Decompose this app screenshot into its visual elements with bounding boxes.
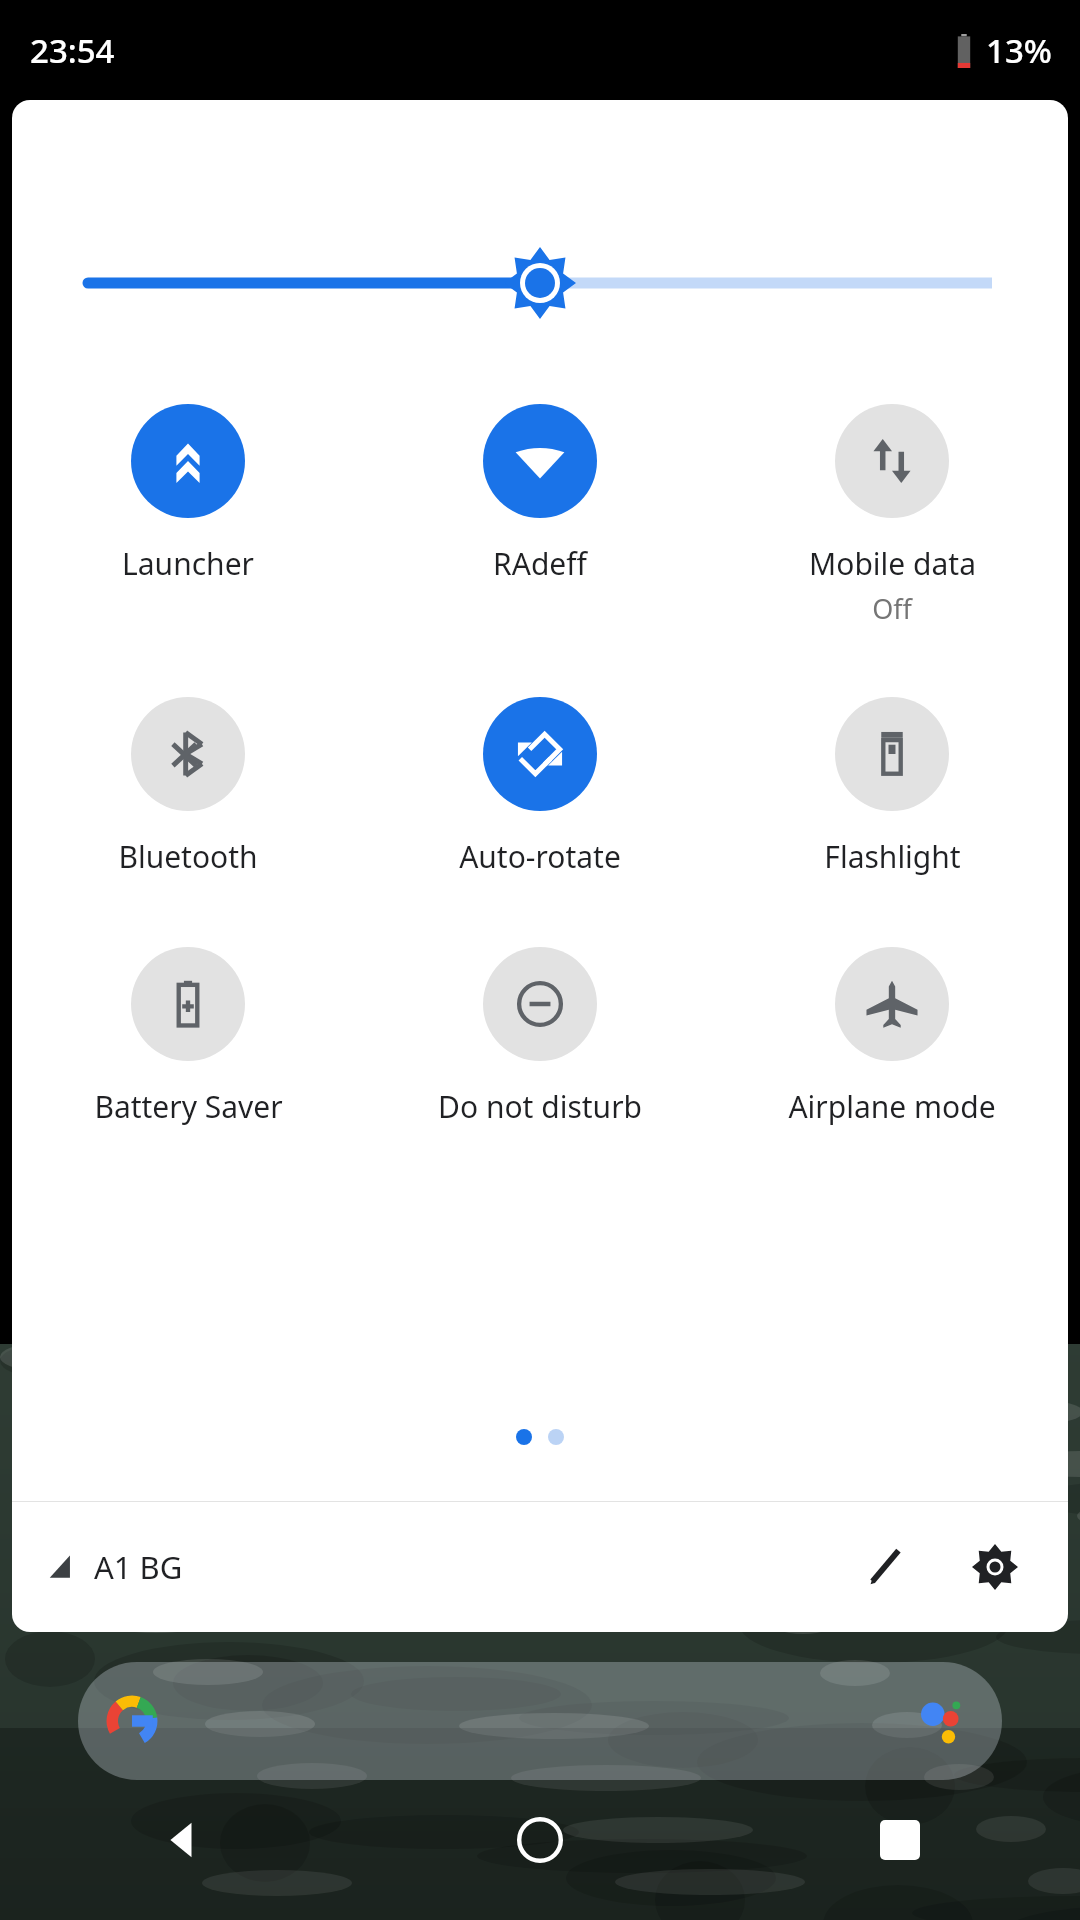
staticText: Do not disturb — [438, 1086, 642, 1127]
button[interactable]: Launcher — [12, 400, 364, 588]
staticText: Launcher — [122, 543, 254, 584]
button[interactable]: Bluetooth — [12, 693, 364, 881]
staticText: RAdeff — [493, 543, 587, 584]
staticText: Flashlight — [824, 836, 961, 877]
button[interactable]: Home — [360, 1760, 720, 1920]
button[interactable]: Search — [78, 1662, 1002, 1780]
button[interactable]: A1 BG — [12, 1546, 830, 1588]
button[interactable]: Flashlight — [716, 693, 1068, 881]
staticText: 13% — [986, 28, 1052, 73]
button[interactable]: Auto-rotate — [364, 693, 716, 881]
button[interactable]: Settings — [940, 1512, 1050, 1622]
button[interactable]: Recents — [720, 1760, 1080, 1920]
staticText: Auto-rotate — [459, 836, 621, 877]
button[interactable]: Battery Saver — [12, 943, 364, 1131]
button[interactable]: Back — [0, 1760, 360, 1920]
button[interactable]: Do not disturb — [364, 943, 716, 1131]
button[interactable]: Airplane mode — [716, 943, 1068, 1131]
staticText: Mobile data — [809, 543, 976, 584]
button[interactable]: Brightness — [12, 243, 1068, 323]
staticText: Battery Saver — [94, 1086, 283, 1127]
staticText: A1 BG — [94, 1546, 183, 1588]
button[interactable]: RAdeff — [364, 400, 716, 588]
button[interactable]: Mobile data — [716, 400, 1068, 631]
staticText: Airplane mode — [788, 1086, 996, 1127]
staticText: 23:54 — [30, 28, 115, 73]
staticText: Bluetooth — [118, 836, 258, 877]
button[interactable]: Edit — [830, 1512, 940, 1622]
staticText: Off — [872, 590, 912, 627]
